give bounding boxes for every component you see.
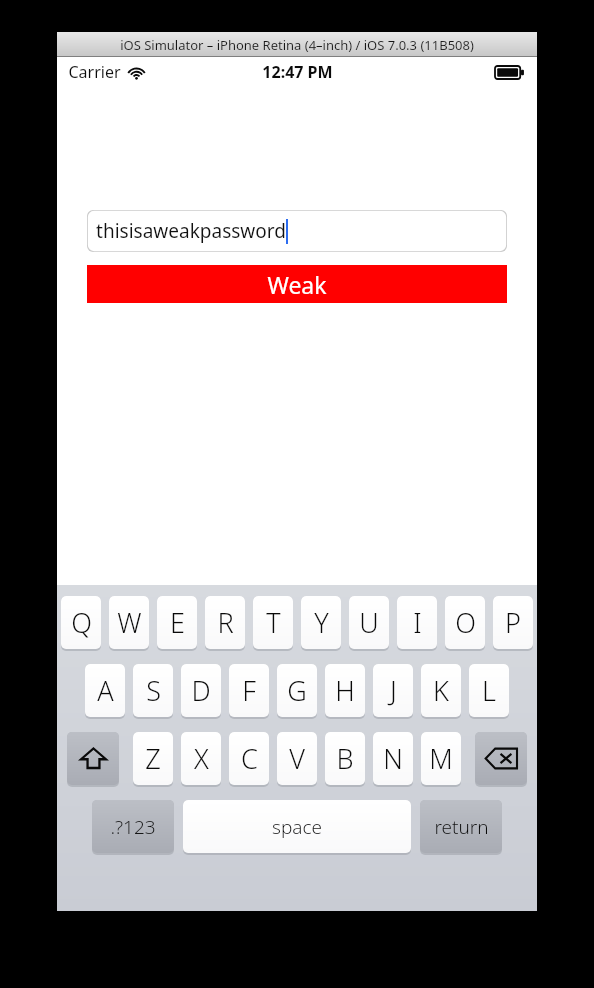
- button[interactable]: Weak: [87, 265, 507, 303]
- staticText: 12:47 PM: [262, 61, 333, 83]
- staticText: V: [289, 740, 305, 777]
- button[interactable]: Shift: [67, 732, 119, 787]
- button[interactable]: S: [133, 664, 173, 719]
- button[interactable]: Delete: [475, 732, 527, 787]
- button[interactable]: B: [325, 732, 365, 787]
- staticText: X: [194, 740, 209, 777]
- staticText: Weak: [267, 269, 327, 300]
- button[interactable]: H: [325, 664, 365, 719]
- button[interactable]: .?123: [92, 800, 174, 855]
- button[interactable]: C: [229, 732, 269, 787]
- staticText: J: [390, 672, 397, 709]
- button[interactable]: R: [205, 596, 245, 651]
- staticText: C: [241, 740, 258, 777]
- button[interactable]: J: [373, 664, 413, 719]
- staticText: H: [335, 672, 355, 709]
- staticText: space: [272, 814, 322, 840]
- button[interactable]: Z: [133, 732, 173, 787]
- staticText: S: [146, 672, 161, 709]
- button[interactable]: E: [157, 596, 197, 651]
- button[interactable]: X: [181, 732, 221, 787]
- staticText: M: [429, 740, 453, 777]
- button[interactable]: O: [445, 596, 485, 651]
- staticText: Z: [145, 740, 161, 777]
- staticText: E: [170, 604, 185, 641]
- button[interactable]: P: [493, 596, 533, 651]
- button[interactable]: I: [397, 596, 437, 651]
- staticText: A: [97, 672, 114, 709]
- button[interactable]: K: [421, 664, 461, 719]
- staticText: D: [191, 672, 211, 709]
- staticText: thisisaweakpassword: [96, 218, 286, 244]
- button[interactable]: U: [349, 596, 389, 651]
- button[interactable]: Q: [61, 596, 101, 651]
- staticText: return: [434, 814, 489, 840]
- button[interactable]: Y: [301, 596, 341, 651]
- staticText: F: [242, 672, 256, 709]
- staticText: R: [217, 604, 234, 641]
- button[interactable]: G: [277, 664, 317, 719]
- button[interactable]: D: [181, 664, 221, 719]
- staticText: .?123: [110, 814, 156, 840]
- staticText: Y: [314, 604, 329, 641]
- staticText: P: [505, 604, 521, 641]
- button[interactable]: return: [420, 800, 502, 855]
- staticText: N: [383, 740, 403, 777]
- staticText: U: [359, 604, 379, 641]
- button[interactable]: M: [421, 732, 461, 787]
- staticText: iOS Simulator – iPhone Retina (4–inch) /…: [120, 36, 474, 54]
- staticText: T: [266, 604, 281, 641]
- staticText: B: [336, 740, 354, 777]
- staticText: G: [287, 672, 307, 709]
- staticText: Q: [71, 604, 92, 641]
- staticText: L: [482, 672, 496, 709]
- button[interactable]: N: [373, 732, 413, 787]
- staticText: O: [455, 604, 476, 641]
- button[interactable]: T: [253, 596, 293, 651]
- button[interactable]: W: [109, 596, 149, 651]
- button[interactable]: space: [183, 800, 411, 855]
- staticText: K: [433, 672, 449, 709]
- button[interactable]: thisisaweakpassword: [87, 210, 507, 252]
- staticText: I: [413, 604, 422, 641]
- button[interactable]: V: [277, 732, 317, 787]
- staticText: W: [117, 604, 142, 641]
- button[interactable]: A: [85, 664, 125, 719]
- button[interactable]: F: [229, 664, 269, 719]
- button[interactable]: L: [469, 664, 509, 719]
- staticText: Carrier: [68, 61, 121, 83]
